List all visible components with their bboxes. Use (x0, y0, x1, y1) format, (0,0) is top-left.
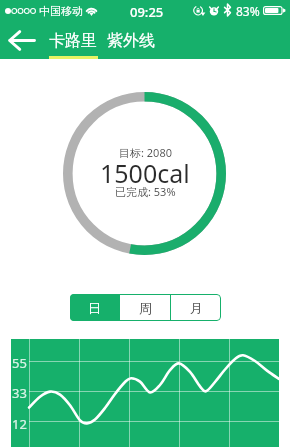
button[interactable]: 紫外线 (103, 22, 159, 59)
staticText: 中国移动 (39, 4, 83, 18)
button[interactable]: Back (3, 22, 41, 59)
staticText: 55 (12, 354, 27, 372)
staticText: 日 (88, 300, 101, 316)
staticText: 周 (139, 300, 152, 316)
button[interactable]: 周 (120, 294, 170, 321)
staticText: 卡路里 (49, 31, 97, 51)
staticText: 月 (190, 300, 203, 316)
staticText: 1500cal (100, 156, 190, 190)
button[interactable]: 卡路里 (45, 22, 101, 59)
staticText: 83% (236, 3, 260, 19)
staticText: 09:25 (130, 3, 164, 21)
staticText: 紫外线 (107, 31, 155, 51)
staticText: 目标: 2080 (119, 145, 172, 160)
staticText: 12 (12, 415, 27, 433)
button[interactable]: 日 (70, 294, 119, 321)
staticText: 33 (12, 384, 27, 402)
button[interactable]: 月 (171, 294, 221, 321)
staticText: 已完成: 53% (115, 184, 176, 199)
